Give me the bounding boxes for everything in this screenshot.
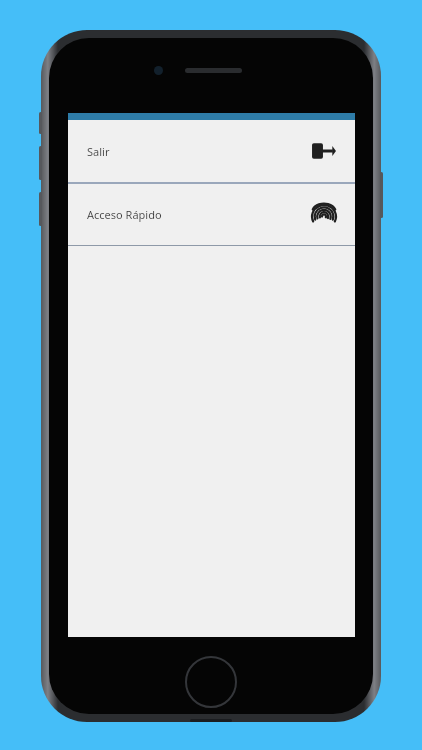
other: Home — [185, 656, 237, 708]
other: Salir — [309, 136, 339, 166]
other: Acceso Rápido — [309, 200, 339, 230]
button[interactable]: Salir — [68, 120, 355, 182]
staticText: Acceso Rápido — [87, 207, 162, 222]
button[interactable]: Acceso Rápido — [68, 184, 355, 245]
staticText: Salir — [87, 144, 110, 159]
